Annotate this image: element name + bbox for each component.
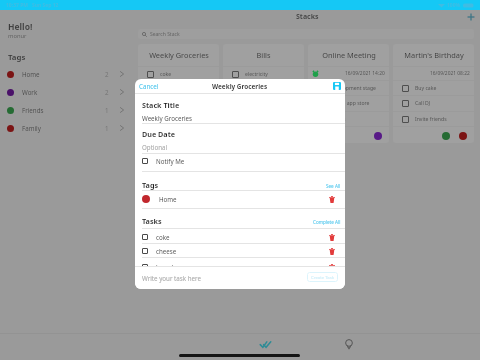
button[interactable]: Save bbox=[332, 81, 342, 91]
staticText: Search Stack bbox=[150, 31, 180, 38]
staticText: 1 bbox=[105, 106, 109, 114]
staticText: Hello! bbox=[8, 21, 33, 33]
staticText: Buy cake bbox=[415, 85, 437, 92]
staticText: Weekly Groceries bbox=[212, 82, 268, 91]
staticText: 16/09/2021 08:22 bbox=[430, 70, 470, 77]
button[interactable]: Martin's Birthday bbox=[393, 44, 474, 143]
staticText: Write your task here bbox=[142, 274, 201, 282]
staticText: bread bbox=[156, 263, 174, 271]
staticText: Family bbox=[22, 124, 41, 132]
staticText: Home bbox=[22, 70, 40, 78]
button[interactable]: Ideas bbox=[329, 336, 369, 352]
staticText: Stack Title bbox=[142, 100, 180, 110]
staticText: Tags bbox=[8, 52, 26, 63]
staticText: Invite friends bbox=[415, 116, 447, 123]
staticText: coke bbox=[156, 233, 170, 241]
button[interactable]: Search Stack bbox=[138, 29, 474, 39]
button[interactable]: bread bbox=[147, 97, 215, 113]
staticText: Stacks bbox=[296, 12, 319, 22]
staticText: bread bbox=[160, 102, 174, 109]
staticText: Sun Sep 12 bbox=[32, 2, 59, 9]
button[interactable]: water bbox=[232, 81, 300, 97]
button[interactable]: Optional bbox=[142, 141, 282, 152]
button[interactable]: Create Task bbox=[307, 272, 338, 282]
button[interactable]: Call DJ bbox=[402, 95, 470, 111]
staticText: 10:37 PM bbox=[6, 2, 28, 9]
button[interactable]: Write your task here bbox=[142, 271, 262, 284]
staticText: Online Meeting bbox=[322, 50, 376, 60]
button[interactable]: Work bbox=[7, 84, 124, 100]
staticText: See All bbox=[326, 183, 341, 189]
button[interactable]: Delete bbox=[327, 262, 337, 272]
button[interactable]: Friends bbox=[7, 102, 124, 118]
button[interactable]: Weekly Groceries bbox=[138, 44, 219, 143]
staticText: Home bbox=[159, 195, 177, 203]
button[interactable]: coke bbox=[142, 230, 337, 244]
button[interactable]: Weekly Groceries bbox=[142, 112, 282, 123]
button[interactable]: See All bbox=[135, 182, 341, 190]
staticText: Create Task bbox=[311, 274, 335, 280]
staticText: 1 bbox=[105, 124, 109, 132]
staticText: Tags bbox=[142, 180, 159, 190]
button[interactable]: Delete bbox=[327, 194, 337, 204]
staticText: Work bbox=[22, 88, 38, 96]
staticText: Tasks bbox=[142, 216, 162, 226]
staticText: 2 bbox=[105, 70, 109, 78]
staticText: 100% bbox=[447, 2, 461, 9]
button[interactable]: Delete bbox=[327, 246, 337, 256]
staticText: Bills bbox=[256, 50, 271, 60]
staticText: Martin's Birthday bbox=[404, 50, 464, 60]
staticText: cheese bbox=[156, 247, 177, 255]
button[interactable]: electricity bbox=[232, 66, 300, 82]
staticText: Notify Me bbox=[156, 157, 185, 165]
button[interactable]: cheese bbox=[147, 81, 215, 97]
staticText: Due Date bbox=[142, 129, 176, 139]
button[interactable]: Online Meeting bbox=[308, 44, 389, 143]
staticText: Cancel bbox=[139, 82, 159, 90]
staticText: Call DJ bbox=[415, 100, 431, 107]
button[interactable]: app to app store bbox=[317, 95, 385, 111]
staticText: Complete All bbox=[313, 219, 341, 225]
staticText: development stage bbox=[330, 85, 376, 92]
button[interactable]: Tasks bbox=[245, 336, 285, 352]
button[interactable]: Family bbox=[7, 120, 124, 136]
button[interactable]: Add stack bbox=[465, 11, 477, 23]
staticText: Friends bbox=[22, 106, 44, 114]
button[interactable]: Invite friends bbox=[402, 111, 470, 127]
button[interactable]: Home bbox=[7, 66, 124, 82]
button[interactable]: Notify Me bbox=[142, 154, 345, 168]
button[interactable]: cheese bbox=[142, 244, 337, 258]
staticText: app to app store bbox=[330, 100, 370, 107]
staticText: coke bbox=[160, 71, 172, 78]
staticText: 16/09/2021 14:20 bbox=[345, 70, 385, 77]
staticText: Optional bbox=[142, 143, 168, 151]
button[interactable]: Bills bbox=[223, 44, 304, 143]
staticText: others bbox=[330, 116, 346, 123]
staticText: 2 bbox=[105, 88, 109, 96]
staticText: Weekly Groceries bbox=[142, 114, 193, 122]
button[interactable]: coke bbox=[147, 66, 215, 82]
button[interactable]: Complete All bbox=[135, 218, 341, 226]
staticText: Weekly Groceries bbox=[149, 50, 209, 60]
button[interactable]: development stage bbox=[317, 80, 385, 96]
button[interactable]: Cancel bbox=[139, 80, 159, 92]
staticText: water bbox=[245, 86, 259, 93]
button[interactable]: Buy cake bbox=[402, 80, 470, 96]
staticText: monur bbox=[8, 32, 27, 40]
button[interactable]: bread bbox=[142, 260, 337, 274]
button[interactable]: others bbox=[317, 111, 385, 127]
staticText: electricity bbox=[245, 71, 268, 78]
button[interactable]: Delete bbox=[327, 232, 337, 242]
